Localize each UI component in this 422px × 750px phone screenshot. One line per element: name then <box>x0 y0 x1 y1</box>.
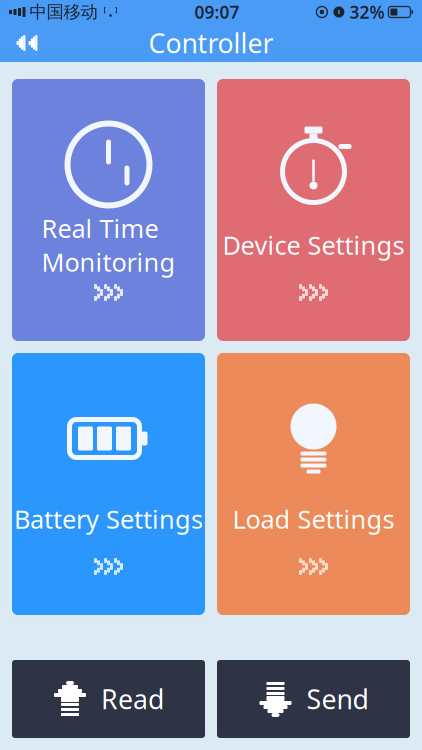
button[interactable]: Read <box>12 660 205 738</box>
button[interactable]: Device Settings <box>217 79 410 341</box>
button[interactable]: Real Time Monitoring <box>12 79 205 341</box>
staticText: Send <box>306 681 368 717</box>
staticText: Load Settings <box>232 502 394 536</box>
button[interactable]: Battery Settings <box>12 353 205 615</box>
button[interactable]: Send <box>217 660 410 738</box>
button[interactable]: Back <box>0 24 54 62</box>
staticText: Battery Settings <box>14 502 203 536</box>
staticText: Read <box>101 681 164 717</box>
staticText: 32% <box>349 0 384 23</box>
staticText: 09:07 <box>194 0 239 23</box>
staticText: Real Time Monitoring <box>41 211 175 279</box>
staticText: 中国移动 <box>29 1 97 23</box>
staticText: Controller <box>148 25 273 61</box>
button[interactable]: Load Settings <box>217 353 410 615</box>
staticText: Device Settings <box>222 228 404 262</box>
